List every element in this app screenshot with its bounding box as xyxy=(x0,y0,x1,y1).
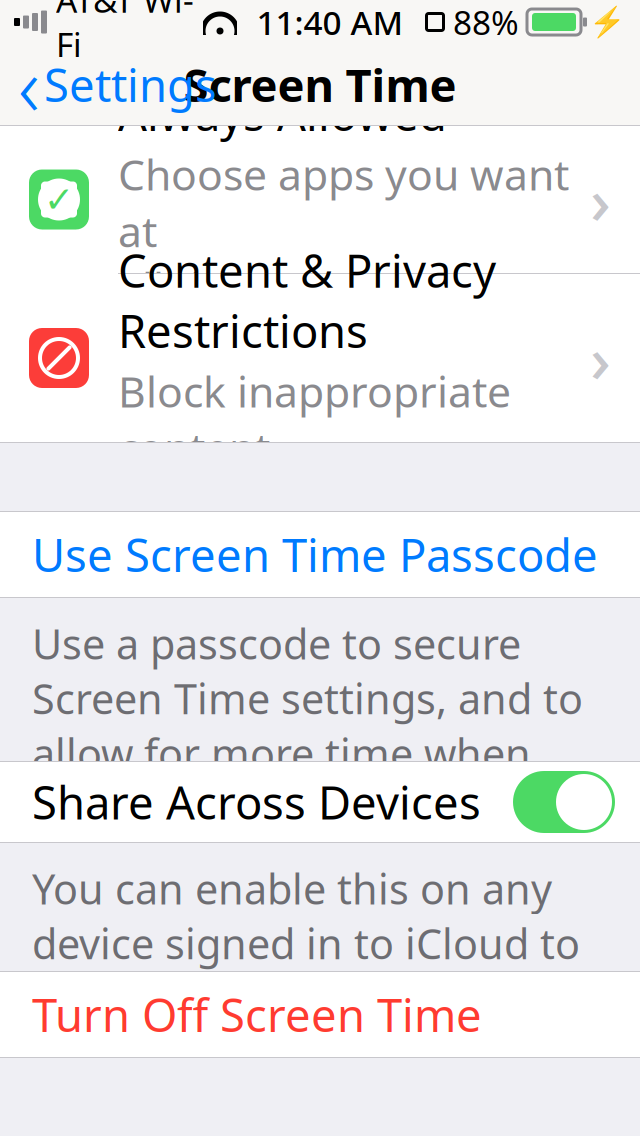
staticText: You can enable this on any device signed… xyxy=(32,861,597,1081)
staticText: Always Allowed xyxy=(118,83,447,144)
staticText: Content & Privacy Restrictions xyxy=(118,240,496,360)
button[interactable]: Share Across Devices xyxy=(0,762,640,842)
staticText: Screen Time xyxy=(183,54,456,115)
staticText: ⚡ xyxy=(589,5,626,39)
staticText: Settings xyxy=(44,54,217,115)
staticText: Block inappropriate content. xyxy=(118,362,511,476)
button[interactable]: Content & Privacy Restrictions xyxy=(0,274,640,442)
staticText: Use Screen Time Passcode xyxy=(32,524,598,585)
staticText: › xyxy=(590,315,611,400)
staticText: Use a passcode to secure Screen Time set… xyxy=(32,616,583,836)
staticText: Turn Off Screen Time xyxy=(32,984,482,1045)
button[interactable]: Use Screen Time Passcode xyxy=(0,512,640,597)
staticText: › xyxy=(590,157,611,242)
staticText: Choose apps you want at all times. xyxy=(118,146,569,316)
button[interactable]: ‹ xyxy=(0,24,217,145)
staticText: Share Across Devices xyxy=(32,772,481,832)
button[interactable]: Turn Off Screen Time xyxy=(0,972,640,1057)
staticText: ‹ xyxy=(18,30,40,139)
button[interactable]: ✓ xyxy=(0,126,640,273)
staticText: AT&T Wi-Fi xyxy=(56,0,194,66)
staticText: ✓ xyxy=(44,179,74,220)
staticText: 88% xyxy=(453,0,519,44)
staticText: 11:40 AM xyxy=(256,0,403,44)
